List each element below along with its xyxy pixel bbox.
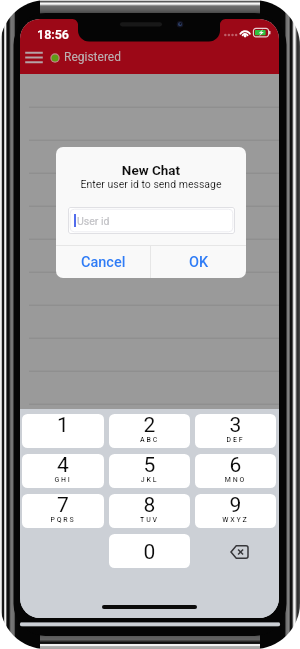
button[interactable]: Open navigation menu bbox=[21, 45, 47, 71]
button[interactable]: 4 bbox=[22, 454, 104, 488]
staticText: Registered bbox=[64, 50, 121, 64]
staticText: 7 bbox=[22, 494, 104, 518]
staticText: 3 bbox=[195, 414, 276, 438]
staticText: 2 bbox=[109, 414, 190, 438]
button[interactable]: Cancel bbox=[56, 246, 150, 278]
button[interactable]: 5 bbox=[109, 454, 190, 488]
button[interactable]: 8 bbox=[109, 494, 190, 528]
button[interactable]: Backspace bbox=[195, 534, 276, 568]
staticText: ABC bbox=[109, 436, 190, 444]
button[interactable]: 2 bbox=[109, 414, 190, 448]
staticText: 6 bbox=[195, 454, 276, 478]
staticText: PQRS bbox=[22, 516, 104, 524]
staticText: MNO bbox=[195, 476, 276, 484]
staticText: 8 bbox=[109, 494, 190, 518]
button[interactable]: 1 bbox=[22, 414, 104, 448]
staticText: TUV bbox=[109, 516, 190, 524]
staticText: User id bbox=[77, 215, 110, 227]
staticText: OK bbox=[189, 254, 209, 271]
staticText: 9 bbox=[195, 494, 276, 518]
button[interactable]: 7 bbox=[22, 494, 104, 528]
staticText: DEF bbox=[195, 436, 276, 444]
button[interactable]: 6 bbox=[195, 454, 276, 488]
staticText: Enter user id to send message bbox=[56, 178, 246, 190]
staticText: 0 bbox=[109, 540, 190, 565]
button[interactable]: 9 bbox=[195, 494, 276, 528]
button[interactable]: 0 bbox=[109, 534, 190, 568]
button[interactable]: User id bbox=[68, 207, 235, 234]
button[interactable]: OK bbox=[151, 246, 246, 278]
staticText: Cancel bbox=[81, 254, 126, 271]
staticText: New Chat bbox=[56, 162, 246, 178]
staticText: 18:56 bbox=[37, 27, 69, 42]
staticText: JKL bbox=[109, 476, 190, 484]
staticText: 5 bbox=[109, 454, 190, 478]
staticText: WXYZ bbox=[195, 516, 276, 524]
button[interactable]: 3 bbox=[195, 414, 276, 448]
staticText: GHI bbox=[22, 476, 104, 484]
staticText: 1 bbox=[22, 414, 104, 438]
staticText: 4 bbox=[22, 454, 104, 478]
